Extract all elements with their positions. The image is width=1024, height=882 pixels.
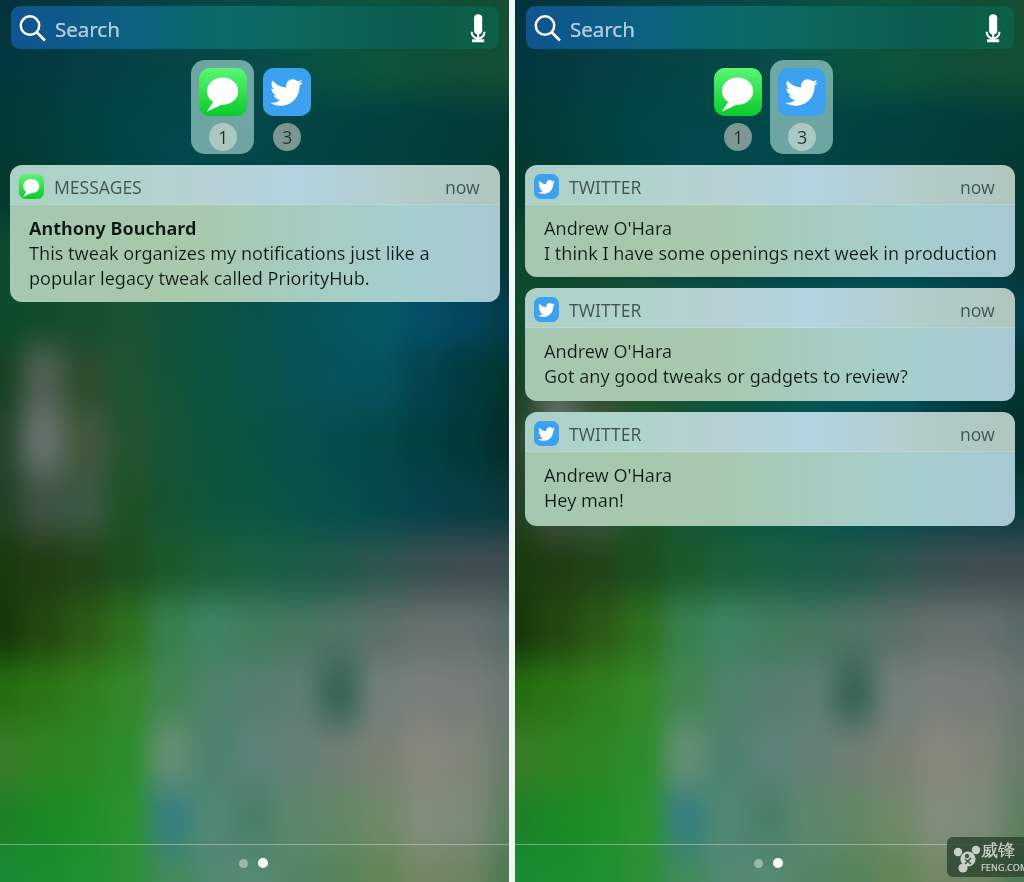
- staticText: Search: [570, 15, 635, 43]
- staticText: I think I have some openings next week i…: [544, 241, 997, 266]
- staticText: 1: [733, 125, 744, 150]
- staticText: Andrew O'Hara: [544, 463, 673, 488]
- staticText: 3: [797, 125, 808, 150]
- staticText: FENG.COM: [981, 861, 1024, 873]
- staticText: 威锋: [981, 840, 1015, 861]
- staticText: Anthony Bouchard: [29, 216, 197, 241]
- staticText: Andrew O'Hara: [544, 339, 673, 364]
- staticText: MESSAGES: [54, 175, 142, 199]
- staticText: now: [960, 298, 995, 322]
- staticText: now: [960, 422, 995, 446]
- staticText: Search: [55, 15, 120, 43]
- button[interactable]: TWITTER: [525, 288, 1015, 401]
- button[interactable]: Messages: [191, 60, 254, 154]
- button[interactable]: Twitter: [770, 60, 833, 154]
- button[interactable]: TWITTER: [525, 412, 1015, 526]
- button[interactable]: Search: [526, 6, 1014, 49]
- staticText: TWITTER: [569, 422, 642, 446]
- staticText: now: [960, 175, 995, 199]
- staticText: popular legacy tweak called PriorityHub.: [29, 266, 370, 291]
- button[interactable]: TWITTER: [525, 165, 1015, 277]
- button[interactable]: MESSAGES: [10, 165, 500, 302]
- staticText: 1: [218, 125, 229, 150]
- button[interactable]: Voice search: [972, 6, 1014, 49]
- staticText: 3: [282, 125, 293, 150]
- button[interactable]: Messages: [706, 60, 769, 154]
- button[interactable]: Voice search: [457, 6, 499, 49]
- staticText: Got any good tweaks or gadgets to review…: [544, 364, 908, 389]
- staticText: TWITTER: [569, 298, 642, 322]
- staticText: TWITTER: [569, 175, 642, 199]
- staticText: now: [445, 175, 480, 199]
- button[interactable]: Search: [11, 6, 499, 49]
- staticText: Andrew O'Hara: [544, 216, 673, 241]
- button[interactable]: Twitter: [255, 60, 318, 154]
- staticText: This tweak organizes my notifications ju…: [29, 241, 430, 266]
- staticText: Hey man!: [544, 488, 624, 513]
